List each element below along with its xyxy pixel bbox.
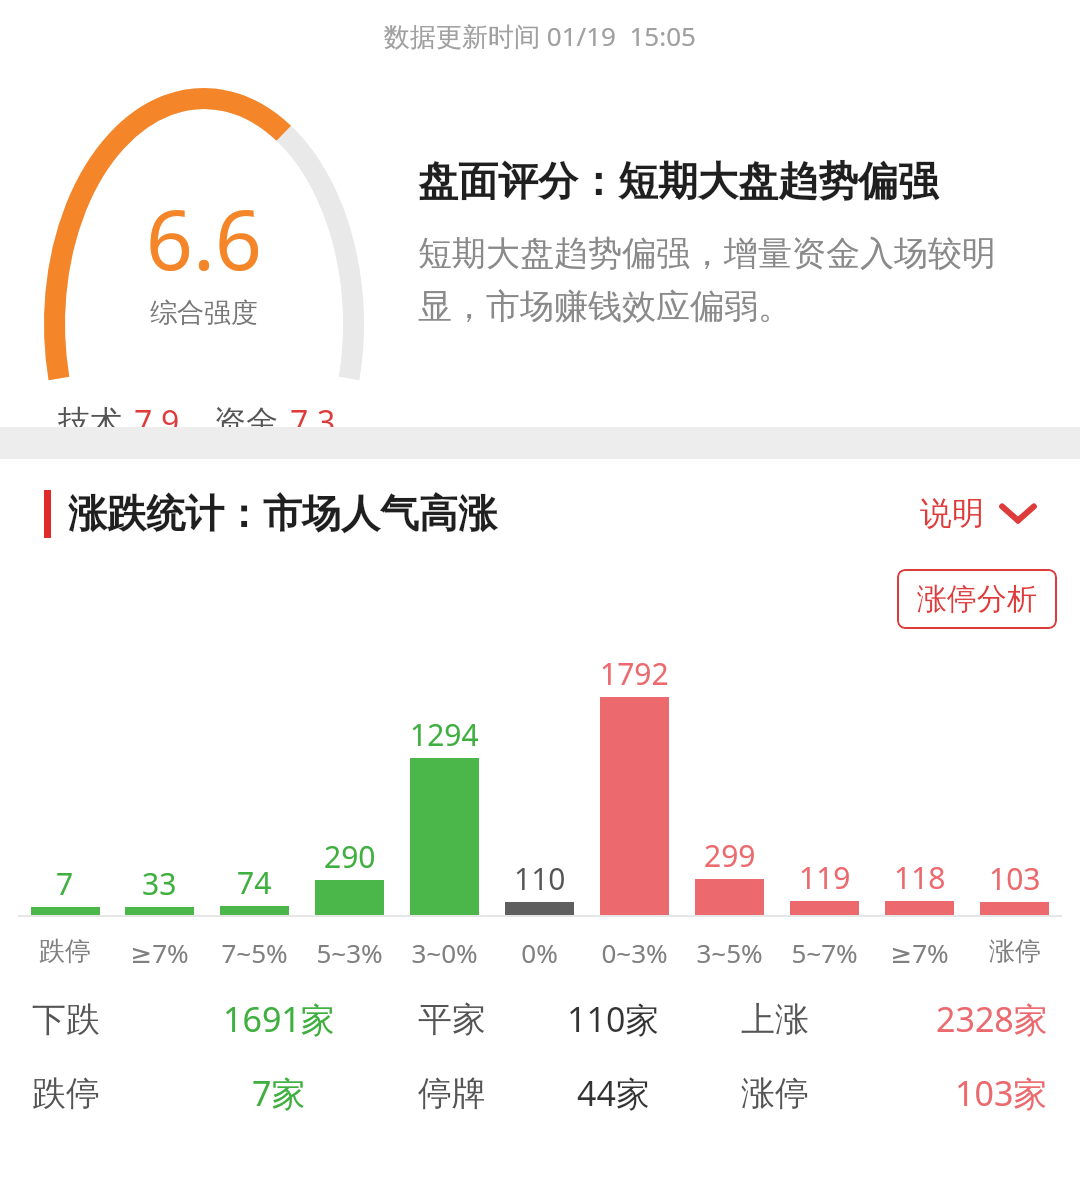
- staticText: 7~5%: [221, 935, 288, 970]
- button[interactable]: 说明: [896, 479, 1080, 547]
- staticText: 103: [989, 858, 1041, 899]
- staticText: 停牌: [418, 1072, 486, 1115]
- staticText: 综合强度: [150, 296, 258, 330]
- staticText: 盘面评分：短期大盘趋势偏强: [418, 156, 938, 206]
- staticText: 6.6: [146, 182, 262, 294]
- staticText: 299: [704, 835, 756, 876]
- staticText: 44家: [577, 1070, 650, 1116]
- staticText: 技术: [58, 402, 122, 442]
- button[interactable]: 涨停分析: [897, 569, 1057, 629]
- other: Expand explanation: [1000, 502, 1036, 524]
- staticText: 1691家: [223, 996, 335, 1042]
- staticText: 0~3%: [601, 935, 668, 970]
- staticText: 7家: [252, 1070, 306, 1116]
- staticText: 2328家: [936, 996, 1048, 1042]
- staticText: 103家: [955, 1070, 1048, 1116]
- staticText: 涨停: [741, 1072, 809, 1115]
- staticText: 跌停: [39, 935, 91, 968]
- staticText: 3~0%: [411, 935, 478, 970]
- staticText: 5~3%: [316, 935, 383, 970]
- staticText: 下跌: [32, 998, 100, 1041]
- staticText: 短期大盘趋势偏强，增量资金入场较明显，市场赚钱效应偏弱。: [418, 232, 1038, 328]
- staticText: 33: [142, 863, 177, 904]
- staticText: 74: [237, 862, 272, 903]
- staticText: 1792: [600, 653, 669, 694]
- staticText: 7.3: [290, 400, 336, 444]
- staticText: 数据更新时间 01/19 15:05: [384, 18, 696, 54]
- staticText: 3~5%: [696, 935, 763, 970]
- button[interactable]: 涨跌统计：市场人气高涨: [0, 475, 517, 552]
- staticText: 资金: [214, 402, 278, 442]
- staticText: 0%: [521, 935, 558, 970]
- staticText: 跌停: [32, 1072, 100, 1115]
- staticText: 110家: [567, 996, 660, 1042]
- staticText: 7.9: [134, 400, 180, 444]
- staticText: 涨停: [989, 935, 1041, 968]
- staticText: 7: [56, 863, 74, 904]
- staticText: 涨停分析: [917, 580, 1037, 618]
- staticText: 1294: [410, 714, 479, 755]
- staticText: 上涨: [741, 998, 809, 1041]
- staticText: 平家: [418, 998, 486, 1041]
- staticText: ≥7%: [130, 935, 189, 970]
- staticText: 110: [514, 858, 566, 899]
- staticText: 118: [894, 857, 946, 898]
- staticText: 119: [799, 857, 851, 898]
- staticText: 涨跌统计：市场人气高涨: [68, 489, 497, 538]
- staticText: 说明: [920, 493, 984, 533]
- staticText: 290: [324, 836, 376, 877]
- staticText: ≥7%: [890, 935, 949, 970]
- staticText: 5~7%: [791, 935, 858, 970]
